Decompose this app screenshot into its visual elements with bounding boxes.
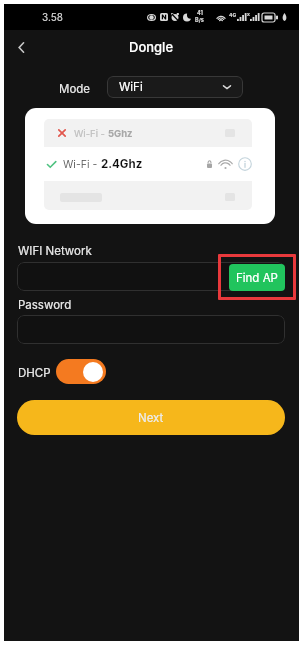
button[interactable]: Info [238, 157, 252, 171]
staticText: Wi-Fi - [74, 128, 108, 139]
staticText: B/s [195, 17, 204, 24]
button[interactable]: Wi-Fi - [32, 147, 267, 181]
button[interactable]: Find AP [229, 264, 285, 291]
staticText: 41 [197, 10, 203, 17]
button[interactable]: Back [8, 34, 34, 60]
staticText: 2.4Ghz [101, 157, 143, 171]
staticText: Password [18, 298, 72, 312]
button[interactable]: Next [17, 400, 285, 435]
staticText: 3.58 [42, 11, 63, 23]
staticText: Wi-Fi - [63, 158, 101, 171]
button[interactable]: Wi-Fi - [44, 119, 252, 147]
button[interactable] [17, 315, 285, 344]
staticText: Next [138, 411, 164, 425]
staticText: Mode [59, 82, 91, 96]
staticText: WiFi [119, 80, 143, 94]
button[interactable] [44, 183, 252, 210]
button[interactable] [17, 262, 285, 291]
staticText: Find AP [236, 271, 278, 285]
staticText: 4G [229, 12, 237, 18]
button[interactable]: WiFi [107, 76, 243, 98]
staticText: DHCP [18, 366, 51, 380]
button[interactable]: DHCP toggle [56, 359, 106, 384]
staticText: x [247, 11, 250, 17]
staticText: Dongle [129, 39, 174, 55]
staticText: 5Ghz [108, 128, 133, 139]
staticText: WIFI Network [18, 244, 92, 258]
